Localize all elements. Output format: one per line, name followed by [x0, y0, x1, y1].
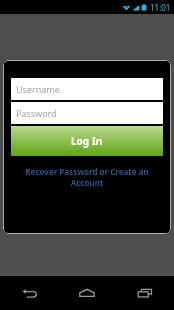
staticText: Recover Password or Create an Account: [11, 166, 163, 188]
button[interactable]: Password: [11, 102, 163, 124]
button[interactable]: Home: [58, 276, 116, 310]
button[interactable]: Recent apps: [116, 276, 174, 310]
button[interactable]: Log In: [11, 126, 163, 156]
button[interactable]: Username: [11, 78, 163, 100]
button[interactable]: Recover Password or Create an Account: [11, 164, 163, 190]
staticText: Username: [16, 83, 60, 95]
button[interactable]: Back: [0, 276, 58, 310]
staticText: 11:01: [150, 2, 171, 13]
staticText: Password: [16, 107, 57, 119]
staticText: Log In: [71, 134, 103, 148]
